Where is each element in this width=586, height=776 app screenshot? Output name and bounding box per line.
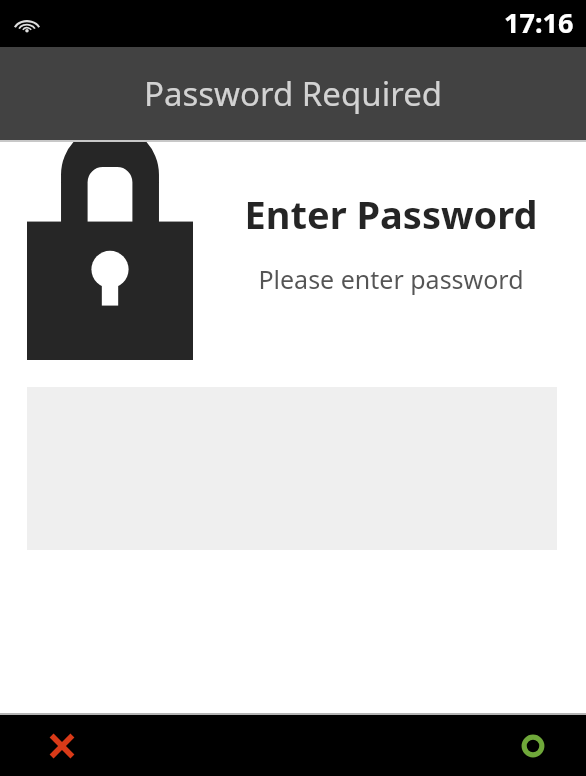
other: Wi-Fi connected — [13, 12, 41, 36]
staticText: 17:16 — [504, 4, 574, 41]
button[interactable]: OK — [480, 715, 586, 776]
button[interactable]: Cancel — [0, 715, 124, 776]
staticText: Please enter password — [258, 262, 524, 296]
staticText: Password Required — [144, 71, 443, 116]
staticText: Enter Password — [244, 188, 538, 240]
